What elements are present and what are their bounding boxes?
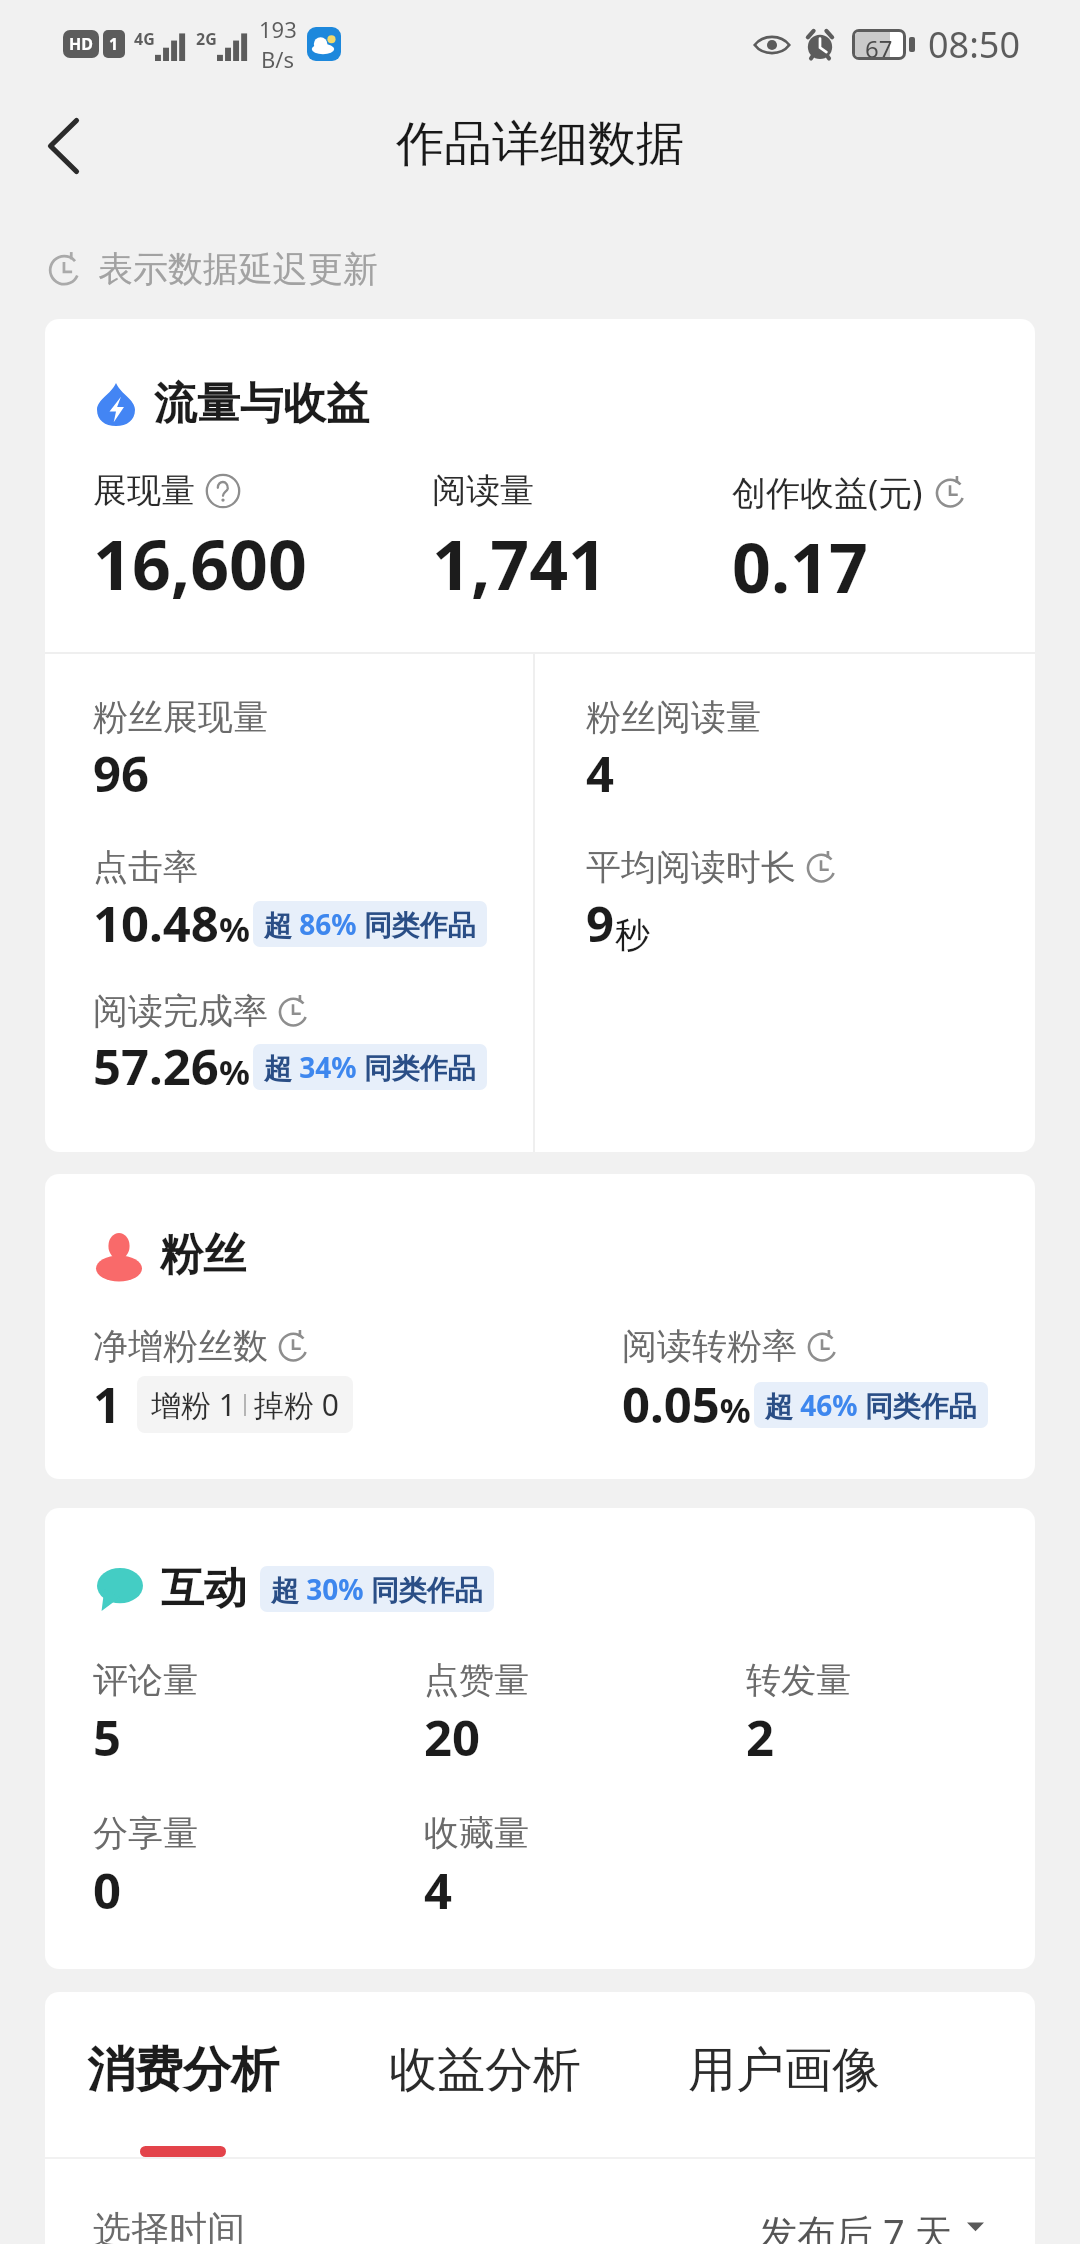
staticText: 0 xyxy=(93,1857,122,1924)
button[interactable]: 消费分析 xyxy=(87,2040,279,2157)
staticText: 0.17 xyxy=(732,520,868,613)
staticText: 流量与收益 xyxy=(154,377,369,431)
staticText: 掉粉 0 xyxy=(254,1384,339,1425)
staticText: 1 xyxy=(93,1371,122,1438)
button[interactable]: 粉丝展现量 xyxy=(93,695,268,807)
staticText: 收藏量 xyxy=(424,1811,529,1855)
staticText: 4G xyxy=(134,28,155,50)
staticText: 转发量 xyxy=(746,1658,851,1702)
staticText: 96 xyxy=(93,740,150,807)
staticText: 表示数据延迟更新 xyxy=(98,247,378,291)
button[interactable]: 阅读完成率 xyxy=(93,989,487,1100)
staticText: 粉丝 xyxy=(160,1228,246,1282)
staticText: 4 xyxy=(424,1857,453,1924)
staticText: 点赞量 xyxy=(424,1658,529,1702)
button[interactable]: 分享量 xyxy=(93,1811,424,1924)
staticText: 净增粉丝数 xyxy=(93,1324,268,1368)
button[interactable]: 发布后 7 天 xyxy=(759,2206,984,2244)
staticText: 超 86% 同类作品 xyxy=(264,905,476,943)
button[interactable]: 点击率 xyxy=(93,845,487,957)
staticText: 作品详细数据 xyxy=(396,114,684,174)
staticText: 展现量 xyxy=(93,469,195,512)
button[interactable]: What is this metric? xyxy=(205,473,241,509)
staticText: 2 xyxy=(746,1704,775,1771)
staticText: 用户画像 xyxy=(688,2040,880,2100)
staticText: 粉丝展现量 xyxy=(93,695,268,739)
staticText: 点击率 xyxy=(93,845,198,889)
staticText: 4 xyxy=(586,740,615,807)
staticText: 选择时间 xyxy=(93,2206,245,2244)
button[interactable]: 阅读量 xyxy=(432,469,732,610)
staticText: B/s xyxy=(261,44,295,74)
button[interactable]: 平均阅读时长 xyxy=(586,845,840,957)
staticText: 超 30% 同类作品 xyxy=(271,1570,483,1608)
staticText: 粉丝阅读量 xyxy=(586,695,761,739)
button[interactable]: 评论量 xyxy=(93,1658,424,1771)
button[interactable]: 粉丝阅读量 xyxy=(586,695,761,807)
staticText: 平均阅读时长 xyxy=(586,845,796,889)
button[interactable]: 用户画像 xyxy=(688,2040,880,2157)
staticText: 1 xyxy=(109,33,119,55)
staticText: 阅读量 xyxy=(432,469,534,512)
staticText: 超 46% 同类作品 xyxy=(765,1386,977,1424)
button[interactable]: Back xyxy=(32,107,94,195)
button[interactable]: 表示数据延迟更新 xyxy=(46,247,378,291)
staticText: 互动 xyxy=(161,1562,247,1616)
staticText: 57.26% xyxy=(93,1033,250,1100)
button[interactable]: 收益分析 xyxy=(389,2040,581,2157)
staticText: 超 34% 同类作品 xyxy=(264,1048,476,1086)
staticText: 发布后 7 天 xyxy=(759,2206,953,2244)
staticText: 20 xyxy=(424,1704,481,1771)
staticText: 创作收益(元) xyxy=(732,469,923,515)
staticText: 10.48% xyxy=(93,890,250,957)
button[interactable]: 收藏量 xyxy=(424,1811,746,1924)
staticText: 秒 xyxy=(615,913,650,957)
button[interactable]: 展现量 xyxy=(93,469,432,610)
staticText: 08:50 xyxy=(928,20,1021,69)
staticText: 193 xyxy=(259,14,297,44)
staticText: 67 xyxy=(865,32,893,57)
button[interactable]: 选择时间 xyxy=(45,2206,1035,2244)
staticText: 分享量 xyxy=(93,1811,198,1855)
staticText: 评论量 xyxy=(93,1658,198,1702)
button[interactable]: 创作收益(元) xyxy=(732,469,1007,613)
staticText: 增粉 1 xyxy=(151,1384,236,1425)
staticText: 2G xyxy=(196,28,217,50)
staticText: 消费分析 xyxy=(87,2040,279,2100)
button[interactable]: 阅读转粉率 xyxy=(622,1324,988,1438)
staticText: 0.05% xyxy=(622,1371,751,1438)
staticText: 16,600 xyxy=(93,517,307,610)
button[interactable]: 转发量 xyxy=(746,1658,996,1771)
staticText: 5 xyxy=(93,1704,122,1771)
staticText: 阅读转粉率 xyxy=(622,1324,797,1368)
staticText: 收益分析 xyxy=(389,2040,581,2100)
staticText: 阅读完成率 xyxy=(93,989,268,1033)
button[interactable]: 点赞量 xyxy=(424,1658,746,1771)
staticText: HD xyxy=(69,33,93,55)
staticText: 1,741 xyxy=(432,517,607,610)
staticText: 9 xyxy=(586,890,615,957)
